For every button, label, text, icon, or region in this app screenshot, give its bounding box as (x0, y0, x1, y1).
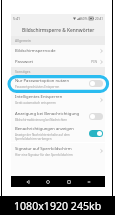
button[interactable]: Übersicht (64, 177, 73, 186)
staticText: Intelligentes Entsperren (15, 94, 63, 100)
staticText: Bildschirmsperrcode (15, 48, 100, 54)
button[interactable]: Menü (84, 177, 93, 186)
button[interactable]: Startseite (43, 177, 52, 186)
staticText: Anzeigung bei Benachrichtigung (15, 111, 80, 117)
staticText: Passwortgeschütztes Entsperren (15, 85, 60, 89)
button[interactable]: Aktiviert (89, 130, 103, 137)
button[interactable]: Intelligentes Entsperren (11, 91, 105, 108)
staticText: Sonstiges (15, 69, 31, 74)
staticText: 60% (81, 17, 88, 21)
button[interactable]: Passwort (11, 56, 105, 67)
button[interactable]: Signatur auf Sperrbildschirm (11, 143, 105, 159)
staticText: Bildschirmsperre & Kennwörter (22, 27, 95, 34)
staticText: Benachrichtigungen anzeigen (15, 126, 74, 132)
staticText: Passwort (15, 59, 91, 65)
button[interactable]: Bildschirmsperrcode (11, 45, 105, 56)
staticText: 1080x1920 245kb (14, 199, 102, 213)
staticText: Hier eine Signatur für den Sperrbildschi… (15, 153, 73, 157)
button[interactable]: Deaktiviert (89, 80, 103, 87)
staticText: 20:41 (95, 17, 104, 21)
staticText: Nur Passwortoption nutzen (15, 78, 70, 84)
staticText: Bildschirmaktivierung bei Nachrichten (15, 118, 67, 122)
button[interactable]: Benachrichtigungen anzeigen (11, 124, 105, 142)
staticText: 5:41 (13, 16, 21, 21)
staticText: Allgemein (15, 38, 31, 43)
staticText: Sperrbildschirm verbergen (15, 137, 52, 141)
button[interactable]: Nur Passwortoption nutzen (11, 75, 105, 92)
button[interactable]: Zurück (23, 177, 32, 186)
staticText: Anzeige der Nachrichteninhalte auf dem (15, 133, 70, 137)
button[interactable]: Anzeigung bei Benachrichtigung (11, 108, 105, 124)
staticText: Gerät automatisch entsperren (15, 101, 56, 105)
button[interactable]: Deaktiviert (89, 113, 103, 120)
staticText: Signatur auf Sperrbildschirm (15, 146, 72, 152)
staticText: PIN (91, 59, 98, 64)
